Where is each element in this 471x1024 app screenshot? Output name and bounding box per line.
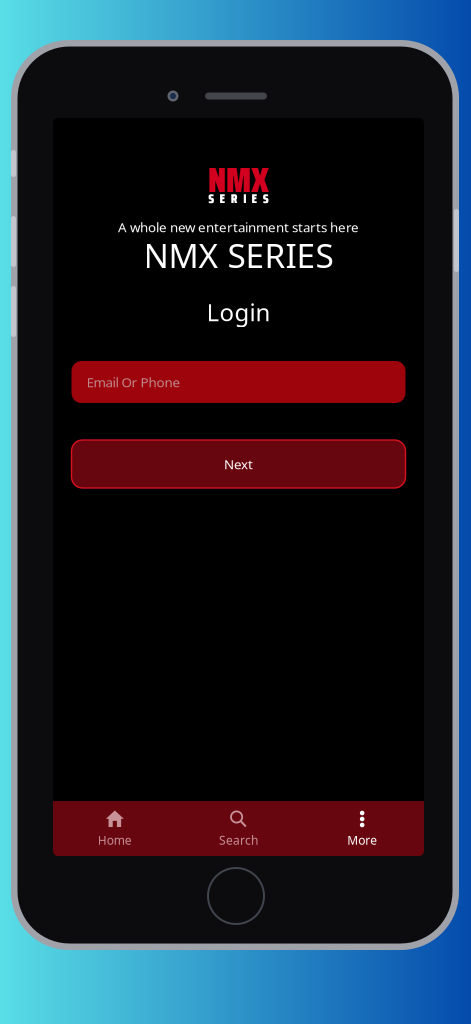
staticText: Home — [98, 832, 132, 848]
staticText: More — [347, 832, 377, 848]
staticText: NMX — [208, 153, 269, 207]
staticText: S — [208, 188, 214, 209]
staticText: I — [243, 188, 246, 209]
staticText: A whole new entertainment starts here — [118, 218, 359, 236]
button[interactable]: Search — [177, 801, 300, 856]
staticText: Email Or Phone — [86, 373, 180, 391]
staticText: R — [231, 188, 238, 209]
staticText: Next — [224, 455, 253, 473]
button[interactable]: More — [300, 801, 424, 856]
button[interactable]: Email Or Phone — [71, 361, 405, 403]
staticText: Login — [206, 296, 270, 328]
staticText: NMX SERIES — [143, 233, 333, 277]
staticText: Search — [219, 832, 258, 848]
staticText: S — [263, 188, 269, 209]
button[interactable]: Home — [53, 801, 177, 856]
button[interactable]: Next — [71, 440, 405, 488]
staticText: E — [220, 188, 226, 209]
staticText: E — [251, 188, 257, 209]
